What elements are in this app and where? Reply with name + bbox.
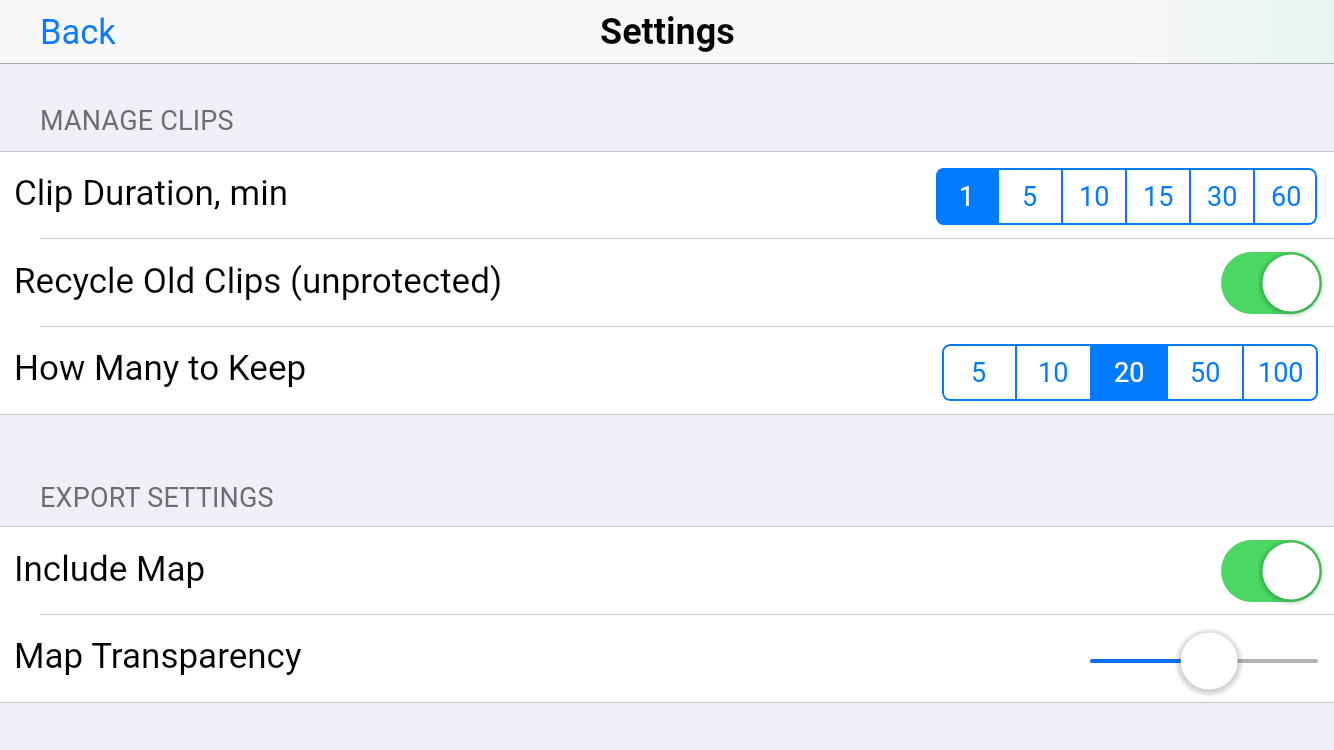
staticText: How Many to Keep — [14, 348, 307, 389]
button[interactable]: 30 — [1191, 168, 1253, 225]
staticText: Settings — [600, 11, 735, 53]
button[interactable]: Clip Duration, min — [0, 152, 1334, 239]
button[interactable]: Back — [0, 0, 140, 64]
staticText: Back — [40, 12, 116, 52]
staticText: EXPORT SETTINGS — [40, 482, 274, 514]
button[interactable]: Map transparency slider — [1092, 630, 1316, 692]
button[interactable]: 20 — [1092, 344, 1166, 401]
button[interactable]: 60 — [1255, 168, 1317, 225]
staticText: 30 — [1207, 181, 1238, 213]
button[interactable]: Include Map — [0, 527, 1334, 615]
button[interactable]: Toggle on — [1221, 540, 1322, 602]
staticText: 100 — [1258, 357, 1304, 389]
staticText: Recycle Old Clips (unprotected) — [14, 261, 503, 302]
button[interactable]: 50 — [1168, 344, 1242, 401]
button[interactable]: 5 — [942, 344, 1015, 401]
staticText: 60 — [1271, 181, 1302, 213]
button[interactable]: How Many to Keep — [0, 327, 1334, 414]
staticText: MANAGE CLIPS — [40, 105, 234, 137]
staticText: 5 — [1022, 181, 1038, 213]
button[interactable]: Map Transparency — [0, 615, 1334, 702]
button[interactable]: 10 — [1017, 344, 1090, 401]
staticText: Include Map — [14, 549, 206, 590]
button[interactable]: 100 — [1244, 344, 1318, 401]
button[interactable]: 15 — [1127, 168, 1189, 225]
button[interactable]: 10 — [1063, 168, 1125, 225]
staticText: Map Transparency — [14, 636, 302, 677]
button[interactable]: Toggle on — [1221, 252, 1322, 314]
staticText: 15 — [1143, 181, 1174, 213]
staticText: 10 — [1038, 357, 1069, 389]
staticText: 50 — [1190, 357, 1221, 389]
button[interactable]: 1 — [936, 168, 997, 225]
button[interactable]: 5 — [999, 168, 1061, 225]
staticText: Clip Duration, min — [14, 173, 288, 214]
button[interactable]: Recycle Old Clips (unprotected) — [0, 239, 1334, 327]
staticText: 1 — [959, 181, 975, 213]
staticText: 5 — [971, 357, 987, 389]
staticText: 20 — [1114, 357, 1145, 389]
staticText: 10 — [1079, 181, 1110, 213]
